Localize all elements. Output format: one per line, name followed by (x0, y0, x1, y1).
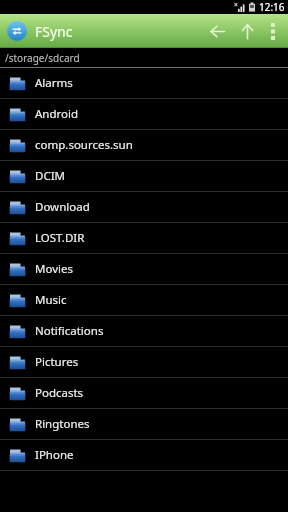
button[interactable]: Notifications (0, 316, 288, 346)
staticText: DCIM (35, 168, 65, 184)
staticText: Pictures (35, 354, 79, 370)
button[interactable]: More options (262, 14, 284, 48)
staticText: Notifications (35, 323, 104, 339)
button[interactable]: Up one level (232, 14, 262, 48)
button[interactable]: IPhone (0, 440, 288, 470)
staticText: /storage/sdcard (5, 51, 80, 65)
button[interactable]: Download (0, 192, 288, 222)
staticText: IPhone (35, 447, 74, 463)
staticText: Alarms (35, 75, 73, 91)
button[interactable]: Ringtones (0, 409, 288, 439)
staticText: FSync (35, 22, 73, 41)
button[interactable]: Movies (0, 254, 288, 284)
staticText: Download (35, 199, 90, 215)
button[interactable]: Pictures (0, 347, 288, 377)
staticText: Ringtones (35, 416, 90, 432)
button[interactable]: DCIM (0, 161, 288, 191)
button[interactable]: LOST.DIR (0, 223, 288, 253)
staticText: Music (35, 292, 67, 308)
button[interactable]: Alarms (0, 68, 288, 98)
staticText: Android (35, 106, 79, 122)
staticText: LOST.DIR (35, 230, 85, 246)
button[interactable]: Android (0, 99, 288, 129)
button[interactable]: Music (0, 285, 288, 315)
staticText: Podcasts (35, 385, 84, 401)
staticText: comp.sources.sun (35, 137, 133, 153)
button[interactable]: Back (202, 14, 232, 48)
button[interactable]: Podcasts (0, 378, 288, 408)
button[interactable]: comp.sources.sun (0, 130, 288, 160)
staticText: 12:16 (259, 0, 285, 14)
staticText: Movies (35, 261, 73, 277)
